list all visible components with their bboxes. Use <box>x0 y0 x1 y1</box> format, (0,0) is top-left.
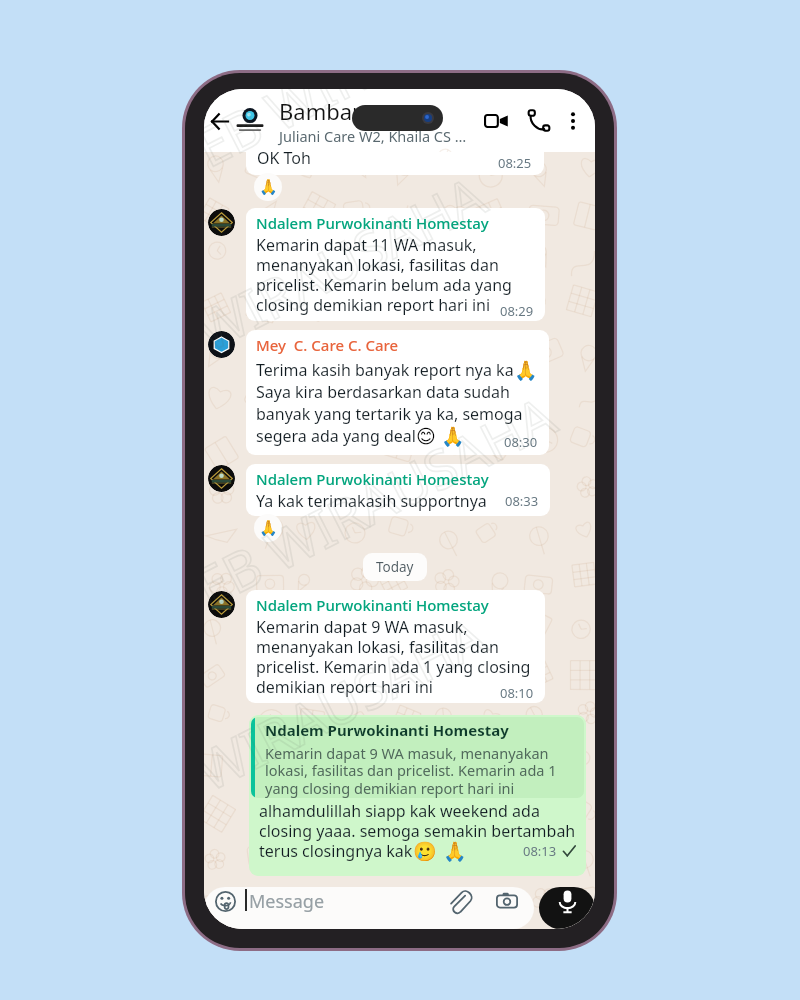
staticText: Kemarin dapat 9 WA masuk, menanyakan lok… <box>265 743 557 798</box>
button[interactable]: Ndalem Purwokinanti Homestay <box>246 208 545 321</box>
staticText: Mey C. Care C. Care <box>256 335 399 355</box>
staticText: Saya kira berdasarkan data sudah banyak … <box>256 381 523 425</box>
staticText: Terima kasih banyak report nya ka <box>256 359 514 381</box>
button[interactable]: Video call <box>479 104 513 138</box>
staticText: 🙏 <box>259 519 278 537</box>
button[interactable]: Mey C. Care C. Care <box>246 330 549 455</box>
staticText: segera ada yang deal <box>256 425 416 447</box>
staticText: Today <box>376 558 414 576</box>
button[interactable]: Back <box>206 108 232 134</box>
staticText: 08:25 <box>498 154 532 172</box>
button[interactable]: More options <box>559 107 587 135</box>
staticText: Ndalem Purwokinanti Homestay <box>265 720 509 740</box>
button[interactable]: Ndalem Purwokinanti Homestay <box>249 715 586 876</box>
staticText: 08:13 <box>523 842 557 860</box>
staticText: 08:33 <box>505 492 539 510</box>
staticText: WEB WIRAUSAHA <box>204 158 498 426</box>
staticText: 08:30 <box>504 433 538 451</box>
staticText: 😊 <box>416 425 436 447</box>
staticText: Bambang <box>279 96 380 126</box>
staticText: Message <box>249 889 325 914</box>
staticText: Ndalem Purwokinanti Homestay <box>256 595 489 615</box>
staticText: Ndalem Purwokinanti Homestay <box>256 469 489 489</box>
staticText: WEB WIRAUSAHA <box>204 378 568 646</box>
staticText: Kemarin dapat 11 WA masuk, menanyakan lo… <box>256 234 512 315</box>
staticText: 🥲 <box>413 840 437 862</box>
staticText: 🙏 <box>514 359 538 381</box>
staticText: 🙏 <box>441 425 465 447</box>
staticText: OK Toh <box>257 152 311 169</box>
button[interactable]: Record voice message <box>539 887 595 929</box>
staticText: 🙏 <box>259 178 278 196</box>
staticText: WEB WIRAUSAHA <box>204 598 498 866</box>
staticText: 08:10 <box>500 684 534 702</box>
button[interactable]: Ndalem Purwokinanti Homestay <box>246 590 545 703</box>
button[interactable]: Ndalem Purwokinanti Homestay <box>246 464 550 516</box>
staticText: terus closingnya kak <box>259 840 413 862</box>
staticText: WEB WIRAUSAHA <box>204 89 568 206</box>
staticText: 08:29 <box>500 302 534 320</box>
staticText: Ndalem Purwokinanti Homestay <box>256 213 489 233</box>
staticText: 🙏 <box>443 840 467 862</box>
button[interactable]: Message <box>204 887 534 929</box>
staticText: Ya kak terimakasih supportnya <box>256 490 487 512</box>
button[interactable]: Voice call <box>523 105 555 137</box>
staticText: alhamdulillah siapp kak weekend ada clos… <box>259 800 576 841</box>
staticText: Juliani Care W2, Khaila CS W2,... <box>279 126 479 146</box>
staticText: Kemarin dapat 9 WA masuk, menanyakan lok… <box>256 616 531 697</box>
